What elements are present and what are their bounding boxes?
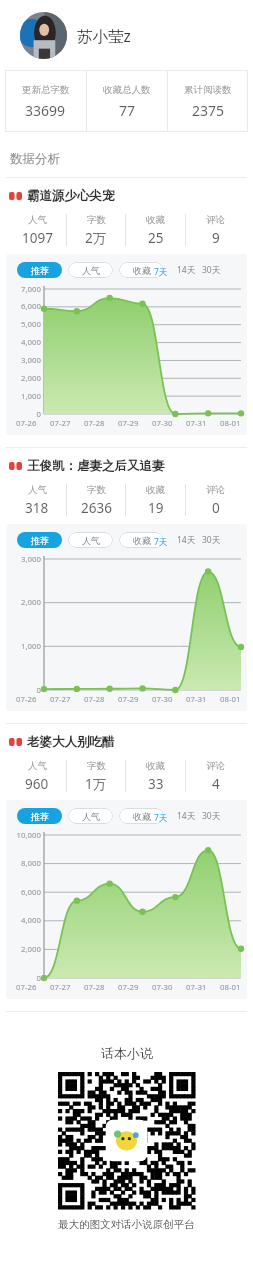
staticText: 08-01	[220, 694, 241, 705]
button[interactable]: 收藏	[119, 262, 164, 278]
staticText: 收藏	[146, 484, 165, 496]
button[interactable]: 人气	[68, 262, 113, 278]
staticText: 霸道源少心尖宠	[27, 188, 115, 204]
staticText: 07-26	[16, 418, 37, 429]
button[interactable]: 14天	[177, 264, 196, 276]
button[interactable]: Avatar	[0, 0, 253, 70]
button[interactable]: QR code	[58, 1072, 195, 1209]
staticText: 33	[148, 775, 164, 793]
staticText: 数据分析	[10, 151, 60, 167]
staticText: 字数	[87, 760, 106, 772]
button[interactable]: 字数	[67, 756, 125, 796]
staticText: 19	[148, 499, 164, 517]
staticText: 0	[36, 409, 41, 420]
staticText: 0	[212, 499, 220, 517]
staticText: 推荐	[31, 811, 49, 822]
staticText: 6,000	[21, 301, 41, 312]
staticText: 1097	[22, 229, 53, 247]
button[interactable]: 人气	[68, 532, 113, 548]
button[interactable]: 30天	[202, 534, 221, 546]
staticText: 07-26	[16, 694, 37, 705]
button[interactable]: 收藏总人数	[87, 70, 167, 132]
staticText: 3,000	[21, 554, 41, 565]
staticText: 4,000	[21, 915, 41, 926]
staticText: 王俊凯：虐妻之后又追妻	[27, 458, 165, 474]
staticText: 字数	[87, 214, 106, 226]
staticText: 33699	[25, 101, 66, 120]
staticText: 08-01	[220, 418, 241, 429]
staticText: 318	[25, 499, 49, 517]
button[interactable]: 7天	[154, 266, 168, 278]
button[interactable]: 人气	[8, 210, 66, 250]
button[interactable]: 字数	[67, 480, 125, 520]
staticText: 07-29	[118, 694, 139, 705]
staticText: 10,000	[16, 830, 41, 841]
button[interactable]: 14天	[177, 810, 196, 822]
button[interactable]: 收藏	[119, 532, 164, 548]
staticText: 07-28	[84, 982, 105, 993]
staticText: 07-29	[118, 418, 139, 429]
button[interactable]: 14天	[177, 534, 196, 546]
staticText: 30天	[202, 264, 221, 276]
staticText: 07-31	[186, 694, 207, 705]
button[interactable]: 人气	[8, 756, 66, 796]
staticText: 更新总字数	[22, 84, 70, 96]
staticText: 07-30	[152, 982, 173, 993]
staticText: 收藏总人数	[103, 84, 151, 96]
button[interactable]: 7天	[154, 812, 168, 824]
button[interactable]: 推荐	[17, 808, 62, 824]
staticText: 1万	[85, 775, 107, 793]
staticText: 评论	[206, 484, 225, 496]
staticText: 14天	[177, 264, 196, 276]
staticText: 收藏	[133, 811, 151, 822]
staticText: 3,000	[21, 355, 41, 366]
button[interactable]: 霸道源少心尖宠	[0, 187, 253, 457]
staticText: 2,000	[21, 944, 41, 955]
staticText: 07-29	[118, 982, 139, 993]
button[interactable]: 王俊凯：虐妻之后又追妻	[0, 457, 253, 733]
button[interactable]: 老婆大人别吃醋	[0, 733, 253, 1021]
staticText: 07-26	[16, 982, 37, 993]
button[interactable]: 收藏	[126, 756, 185, 796]
staticText: 1,000	[21, 391, 41, 402]
staticText: 人气	[28, 214, 47, 226]
staticText: 最大的图文对话小说原创平台	[58, 1218, 195, 1231]
button[interactable]: 更新总字数	[5, 70, 86, 132]
button[interactable]: 评论	[186, 480, 245, 520]
staticText: 评论	[206, 760, 225, 772]
staticText: 5,000	[21, 319, 41, 330]
staticText: 07-30	[152, 694, 173, 705]
staticText: 07-27	[50, 694, 71, 705]
button[interactable]: 评论	[186, 210, 245, 250]
staticText: 07-30	[152, 418, 173, 429]
staticText: 07-27	[50, 418, 71, 429]
button[interactable]: 人气	[8, 480, 66, 520]
staticText: 7天	[154, 266, 168, 278]
staticText: 收藏	[133, 535, 151, 546]
staticText: 话本小说	[101, 1045, 153, 1061]
button[interactable]: 人气	[68, 808, 113, 824]
staticText: 2万	[85, 229, 107, 247]
staticText: 7天	[154, 812, 168, 824]
button[interactable]: 30天	[202, 264, 221, 276]
staticText: 人气	[82, 535, 100, 546]
button[interactable]: 评论	[186, 756, 245, 796]
staticText: 收藏	[146, 760, 165, 772]
staticText: 8,000	[21, 858, 41, 869]
button[interactable]: 推荐	[17, 532, 62, 548]
button[interactable]: 30天	[202, 810, 221, 822]
staticText: 推荐	[31, 535, 49, 546]
staticText: 07-28	[84, 694, 105, 705]
button[interactable]: 7天	[154, 536, 168, 548]
other: Avatar	[20, 12, 67, 59]
button[interactable]: 收藏	[119, 808, 164, 824]
staticText: 0	[36, 685, 41, 696]
button[interactable]: 收藏	[126, 480, 185, 520]
button[interactable]: 推荐	[17, 262, 62, 278]
button[interactable]: 累计阅读数	[168, 70, 248, 132]
button[interactable]: 收藏	[126, 210, 185, 250]
staticText: 人气	[28, 484, 47, 496]
button[interactable]: 字数	[67, 210, 125, 250]
staticText: 07-31	[186, 418, 207, 429]
staticText: 14天	[177, 534, 196, 546]
